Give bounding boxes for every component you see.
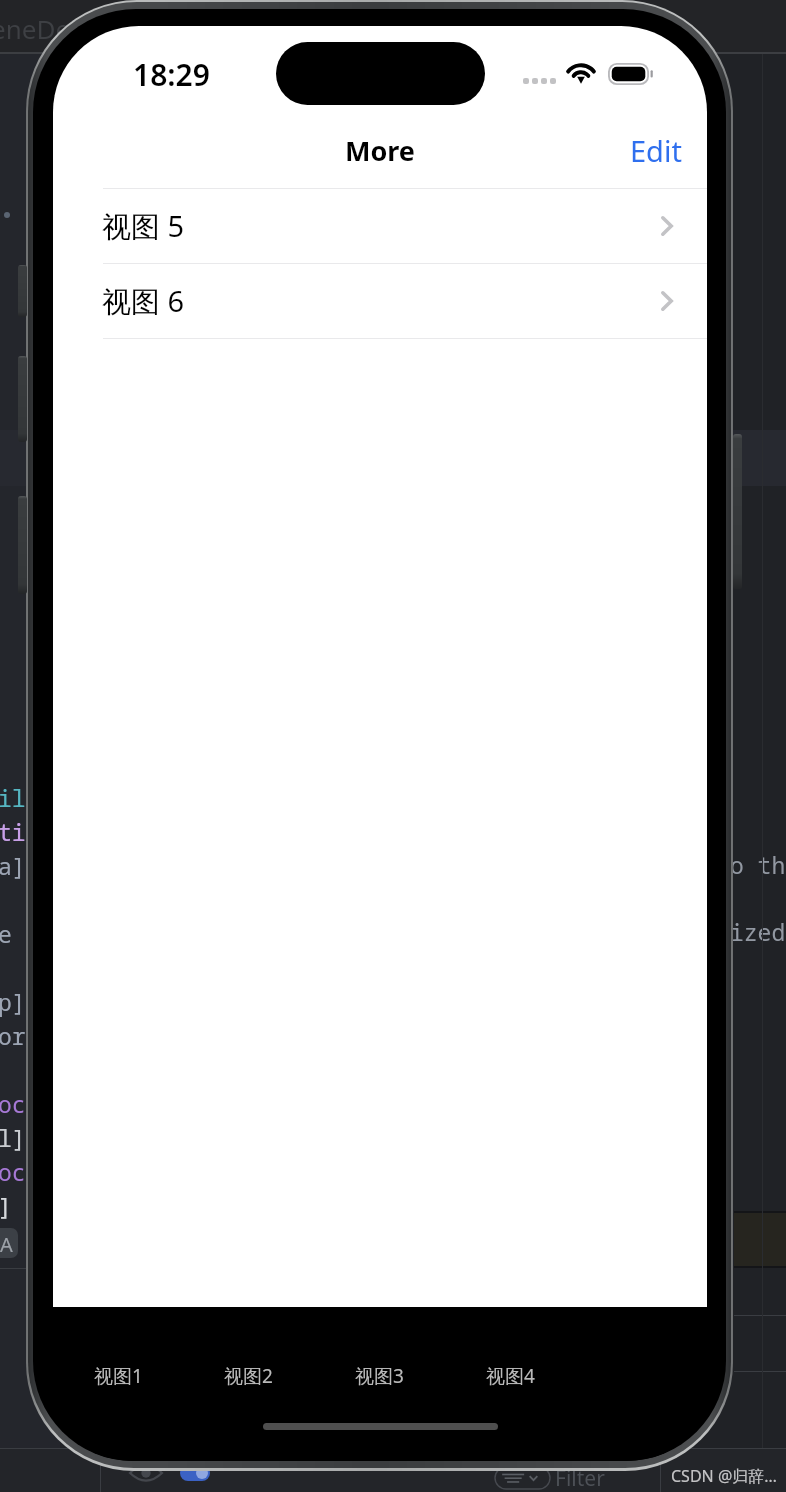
button[interactable]: 视图4 <box>445 1359 576 1393</box>
staticText: 18:29 <box>133 54 210 95</box>
staticText: a] <box>0 850 26 881</box>
button[interactable]: 视图1 <box>53 1359 183 1393</box>
staticText: 视图3 <box>355 1363 404 1389</box>
staticText: More <box>345 132 415 169</box>
staticText: 视图 6 <box>102 281 185 321</box>
button[interactable]: 视图3 <box>314 1359 445 1393</box>
button[interactable]: 视图 6 <box>53 264 707 338</box>
staticText: ] <box>0 1190 12 1221</box>
staticText: 视图1 <box>94 1363 143 1389</box>
staticText: or <box>0 1020 26 1051</box>
staticText: p] <box>0 986 26 1017</box>
staticText: e <box>0 918 12 949</box>
staticText: A <box>0 1231 13 1258</box>
staticText: l] <box>0 1122 26 1153</box>
staticText: ized <box>730 916 786 947</box>
staticText: oc <box>0 1156 26 1187</box>
staticText: 视图2 <box>224 1363 273 1389</box>
staticText: Filter <box>555 1464 605 1492</box>
staticText: o th <box>730 849 786 880</box>
button[interactable]: 视图 5 <box>53 189 707 263</box>
staticText: il <box>0 782 26 813</box>
staticText: oc <box>0 1088 26 1119</box>
staticText: eneDele <box>0 11 92 46</box>
staticText: ti <box>0 816 26 847</box>
staticText: Edit <box>630 131 682 170</box>
button[interactable]: 视图2 <box>183 1359 314 1393</box>
staticText: 视图4 <box>486 1363 535 1389</box>
staticText: CSDN @归辞… <box>671 1465 777 1487</box>
staticText: 视图 5 <box>102 206 185 246</box>
button[interactable]: Edit <box>606 121 707 180</box>
